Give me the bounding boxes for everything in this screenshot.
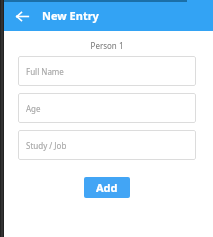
button[interactable]: Study / Job [18,130,196,160]
staticText: Full Name [26,66,64,77]
button[interactable]: Full Name [18,56,196,86]
staticText: New Entry [42,8,99,23]
staticText: Person 1 [18,40,196,51]
button[interactable]: Back [11,5,33,27]
button[interactable]: Add [84,177,130,198]
button[interactable]: Age [18,93,196,123]
staticText: Study / Job [26,140,67,151]
staticText: Age [26,103,41,114]
staticText: Add [96,180,118,195]
